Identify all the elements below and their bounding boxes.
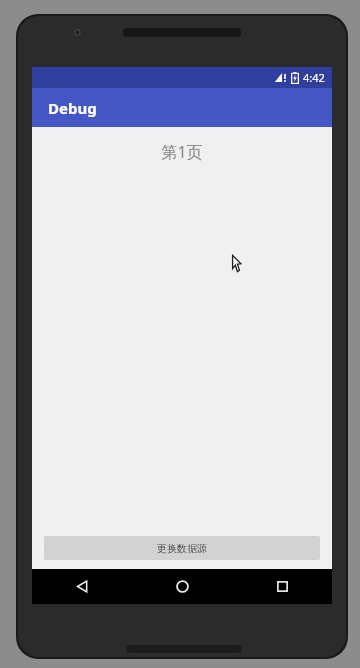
- button[interactable]: 更换数据源: [44, 536, 320, 560]
- staticText: Debug: [48, 98, 97, 118]
- staticText: 更换数据源: [157, 542, 207, 555]
- button[interactable]: Back: [32, 569, 132, 604]
- staticText: 第1页: [161, 141, 203, 163]
- button[interactable]: Recent apps: [232, 569, 332, 604]
- staticText: 4:42: [303, 70, 325, 85]
- button[interactable]: Home: [132, 569, 232, 604]
